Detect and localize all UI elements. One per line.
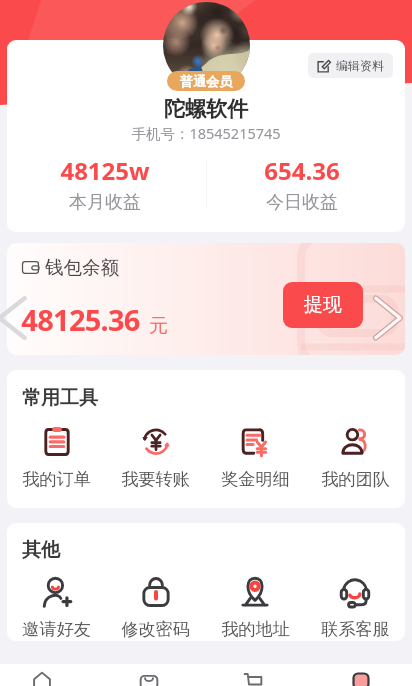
button[interactable]: Avatar bbox=[163, 2, 250, 89]
button[interactable]: 654.36 bbox=[203, 154, 400, 214]
button[interactable]: 我的团队 bbox=[305, 426, 405, 490]
staticText: 我的团队 bbox=[321, 468, 390, 490]
staticText: 我的地址 bbox=[221, 618, 290, 640]
staticText: 元 bbox=[149, 314, 168, 338]
staticText: 编辑资料 bbox=[336, 58, 384, 73]
staticText: 普通会员 bbox=[180, 73, 232, 89]
staticText: 我的订单 bbox=[22, 468, 91, 490]
button[interactable]: 我的地址 bbox=[205, 576, 305, 640]
button[interactable]: 48125w bbox=[7, 154, 203, 214]
staticText: 奖金明细 bbox=[221, 468, 290, 490]
button[interactable]: 邀请好友 bbox=[7, 576, 106, 640]
button[interactable]: 编辑资料 bbox=[308, 53, 393, 78]
button[interactable]: 提现 bbox=[283, 282, 363, 328]
button[interactable]: 联系客服 bbox=[305, 576, 405, 640]
staticText: 联系客服 bbox=[321, 618, 390, 640]
button[interactable]: 修改密码 bbox=[106, 576, 205, 640]
button[interactable]: 我要转账 bbox=[106, 426, 205, 490]
staticText: 今日收益 bbox=[266, 191, 338, 214]
staticText: 我要转账 bbox=[121, 468, 190, 490]
staticText: 其他 bbox=[22, 538, 60, 562]
staticText: 提现 bbox=[304, 293, 342, 317]
button[interactable]: 我的订单 bbox=[7, 426, 106, 490]
staticText: 手机号：18545215745 bbox=[131, 123, 281, 143]
button[interactable]: 奖金明细 bbox=[205, 426, 305, 490]
staticText: 48125.36 bbox=[21, 300, 140, 339]
button[interactable]: 首页 bbox=[0, 664, 86, 686]
staticText: 常用工具 bbox=[22, 386, 98, 410]
staticText: 本月收益 bbox=[69, 191, 141, 214]
button[interactable]: 普通会员 bbox=[167, 71, 245, 91]
staticText: 钱包余额 bbox=[45, 256, 119, 279]
staticText: 邀请好友 bbox=[22, 618, 91, 640]
staticText: 654.36 bbox=[264, 154, 340, 187]
button[interactable]: 购物车 bbox=[212, 664, 298, 686]
staticText: 修改密码 bbox=[121, 618, 190, 640]
staticText: 48125w bbox=[60, 154, 150, 187]
button[interactable]: 我的 bbox=[318, 664, 404, 686]
staticText: 陀螺软件 bbox=[164, 96, 248, 122]
button[interactable]: 消息 bbox=[106, 664, 192, 686]
